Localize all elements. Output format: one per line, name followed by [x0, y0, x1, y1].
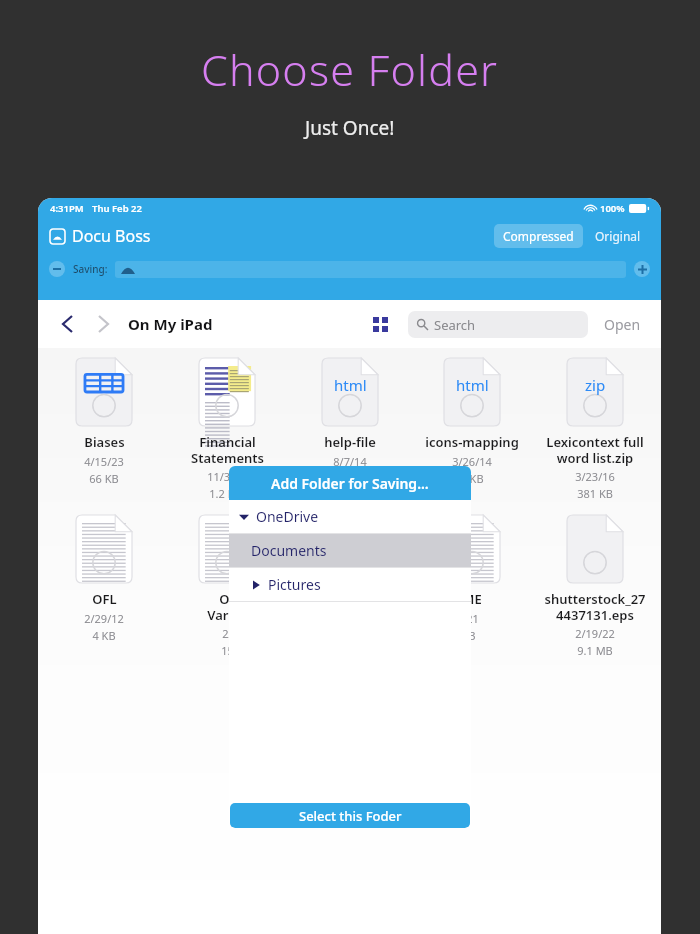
- staticText: Documents: [251, 541, 327, 560]
- staticText: Open: [604, 315, 641, 334]
- staticText: Thu Feb 22: [92, 202, 142, 215]
- staticText: Add Folder for Saving...: [271, 474, 429, 493]
- staticText: 9.1 MB: [577, 643, 613, 658]
- button[interactable]: Financial Statements: [170, 356, 284, 503]
- staticText: Os Variab: [207, 590, 248, 623]
- button[interactable]: zip: [538, 356, 652, 503]
- staticText: Financial Statements: [191, 433, 264, 466]
- staticText: 3/26/14: [452, 454, 492, 469]
- staticText: 21: [466, 611, 479, 626]
- button[interactable]: Back: [54, 311, 80, 337]
- button[interactable]: Os Variab: [170, 513, 284, 660]
- button[interactable]: Open: [600, 311, 645, 338]
- staticText: Search: [434, 316, 476, 334]
- staticText: help-file: [324, 433, 376, 451]
- staticText: 3: [469, 628, 476, 643]
- button[interactable]: Original: [587, 224, 649, 248]
- button[interactable]: Remove: [49, 261, 65, 277]
- staticText: html: [456, 375, 489, 395]
- staticText: 4/15/23: [84, 454, 124, 469]
- staticText: 11/3/21: [207, 469, 247, 484]
- button[interactable]: Add: [634, 261, 650, 277]
- button[interactable]: Search: [408, 311, 588, 338]
- staticText: 100%: [600, 202, 625, 215]
- staticText: shutterstock_27 4437131.eps: [544, 590, 646, 623]
- button[interactable]: Forward: [90, 311, 116, 337]
- staticText: 3/23/16: [575, 469, 615, 484]
- staticText: Docu Boss: [72, 225, 151, 247]
- staticText: 12 KB: [335, 471, 365, 486]
- staticText: 2/: [222, 626, 233, 641]
- staticText: 4 KB: [92, 628, 116, 643]
- staticText: 4:31PM: [50, 202, 84, 215]
- staticText: ME: [462, 590, 482, 608]
- button[interactable]: Pictures: [229, 568, 471, 601]
- staticText: Choose Folder: [201, 40, 499, 99]
- staticText: Lexicontext full word list.zip: [546, 433, 644, 466]
- staticText: 2/29/12: [84, 611, 124, 626]
- button[interactable]: Add Folder for Saving...: [229, 466, 471, 500]
- staticText: 8/7/14: [333, 454, 367, 469]
- button[interactable]: shutterstock_27 4437131.eps: [538, 513, 652, 660]
- staticText: OneDrive: [256, 507, 319, 526]
- other: App icon: [50, 229, 65, 244]
- button[interactable]: [115, 261, 626, 278]
- staticText: 2/19/22: [575, 626, 615, 641]
- staticText: 15: [221, 643, 234, 658]
- button[interactable]: OFL: [47, 513, 161, 645]
- staticText: Compressed: [503, 228, 574, 244]
- button[interactable]: Select this Foder: [230, 803, 470, 828]
- button[interactable]: Biases: [47, 356, 161, 488]
- staticText: zip: [585, 375, 606, 395]
- staticText: 1.2 MB: [209, 486, 245, 501]
- staticText: html: [334, 375, 367, 395]
- staticText: Select this Foder: [299, 807, 402, 825]
- staticText: 4 KB: [460, 471, 484, 486]
- staticText: On My iPad: [128, 314, 213, 334]
- staticText: 381 KB: [577, 486, 613, 501]
- button[interactable]: html: [293, 356, 407, 488]
- staticText: icons-mapping: [425, 433, 519, 451]
- button[interactable]: [293, 513, 407, 592]
- staticText: Original: [595, 228, 641, 244]
- button[interactable]: Documents: [229, 534, 471, 567]
- staticText: Just Once!: [305, 115, 395, 141]
- staticText: Pictures: [268, 575, 321, 594]
- staticText: 66 KB: [89, 471, 119, 486]
- button[interactable]: Grid view: [366, 310, 394, 338]
- staticText: Biases: [84, 433, 125, 451]
- button[interactable]: html: [415, 356, 529, 488]
- staticText: OFL: [92, 590, 117, 608]
- button[interactable]: ME: [415, 513, 529, 645]
- staticText: Saving:: [73, 262, 108, 276]
- button[interactable]: OneDrive: [229, 500, 471, 533]
- button[interactable]: Compressed: [494, 224, 583, 248]
